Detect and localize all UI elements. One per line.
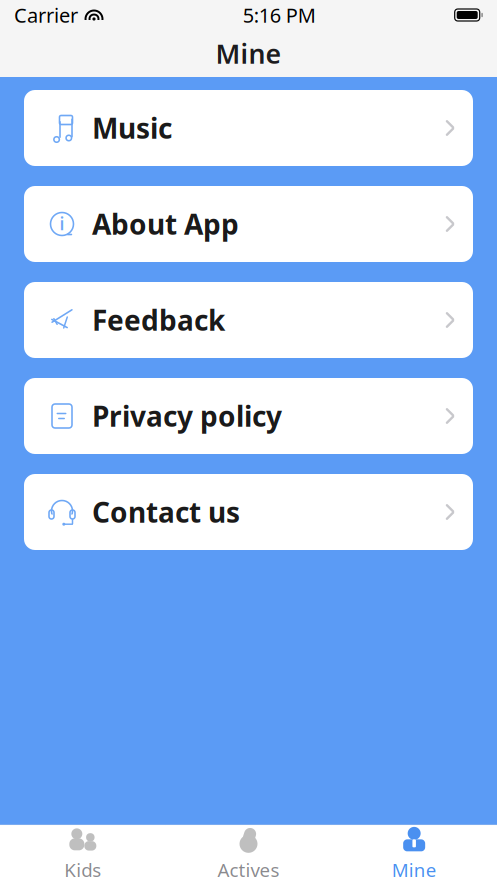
staticText: Actives — [217, 857, 279, 882]
button[interactable]: Feedback — [24, 282, 473, 358]
button[interactable]: i — [24, 186, 473, 262]
button[interactable]: Mine — [331, 825, 497, 883]
staticText: Privacy policy — [92, 397, 282, 435]
button[interactable]: Actives — [166, 825, 331, 883]
staticText: Mine — [215, 36, 281, 71]
staticText: Mine — [392, 857, 437, 882]
button[interactable]: Kids — [0, 825, 166, 883]
staticText: Carrier — [14, 2, 78, 28]
staticText: Music — [92, 109, 172, 147]
staticText: Contact us — [92, 493, 240, 531]
staticText: 5:16 PM — [243, 2, 316, 28]
staticText: Kids — [64, 857, 101, 882]
staticText: About App — [92, 205, 239, 243]
staticText: Feedback — [92, 301, 225, 339]
button[interactable]: Contact us — [24, 474, 473, 550]
staticText: i — [59, 212, 64, 235]
button[interactable]: Privacy policy — [24, 378, 473, 454]
button[interactable]: Music — [24, 90, 473, 166]
